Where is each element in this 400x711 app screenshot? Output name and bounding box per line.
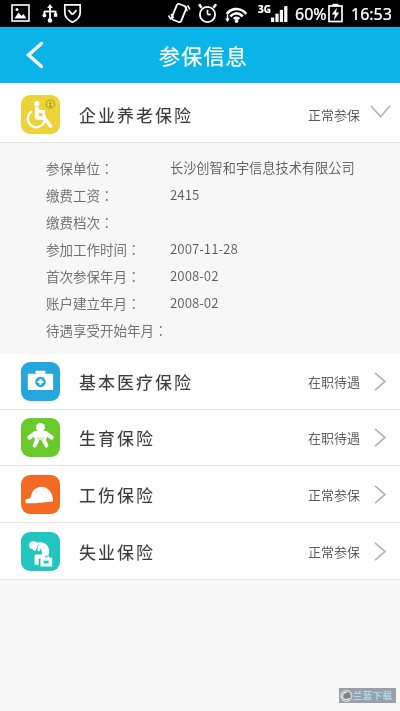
staticText: 2008-02 bbox=[170, 293, 219, 312]
button[interactable]: Back bbox=[0, 27, 62, 83]
staticText: 账户建立年月： bbox=[46, 293, 141, 313]
button[interactable]: 企业养老保险 bbox=[0, 83, 400, 142]
staticText: 在职待遇 bbox=[308, 372, 361, 391]
staticText: 首次参保年月： bbox=[46, 266, 141, 286]
staticText: 待遇享受开始年月： bbox=[46, 320, 168, 340]
staticText: 16:53 bbox=[351, 3, 392, 25]
staticText: 参保信息 bbox=[159, 40, 248, 70]
staticText: 在职待遇 bbox=[308, 428, 361, 447]
staticText: 工伤保险 bbox=[79, 482, 155, 507]
button[interactable]: 工伤保险 bbox=[0, 466, 400, 522]
staticText: 企业养老保险 bbox=[79, 102, 193, 127]
staticText: 2008-02 bbox=[170, 266, 219, 285]
staticText: 3G bbox=[258, 2, 271, 16]
staticText: 长沙创智和宇信息技术有限公司 bbox=[170, 158, 355, 177]
button[interactable]: 生育保险 bbox=[0, 410, 400, 465]
staticText: 正常参保 bbox=[308, 485, 361, 504]
staticText: 2007-11-28 bbox=[170, 239, 238, 258]
staticText: 参保单位： bbox=[46, 158, 114, 178]
button[interactable]: 基本医疗保险 bbox=[0, 354, 400, 409]
staticText: 参加工作时间： bbox=[46, 239, 141, 259]
staticText: 缴费工资： bbox=[46, 185, 114, 205]
staticText: 60% bbox=[295, 3, 327, 25]
staticText: 基本医疗保险 bbox=[79, 369, 193, 394]
staticText: 生育保险 bbox=[79, 425, 155, 450]
staticText: 正常参保 bbox=[308, 542, 361, 561]
staticText: 2415 bbox=[170, 185, 200, 204]
button[interactable]: 失业保险 bbox=[0, 523, 400, 579]
staticText: 失业保险 bbox=[79, 539, 155, 564]
staticText: 正常参保 bbox=[308, 105, 361, 124]
staticText: 兰蓝下载 bbox=[353, 688, 393, 702]
staticText: 缴费档次： bbox=[46, 212, 114, 232]
